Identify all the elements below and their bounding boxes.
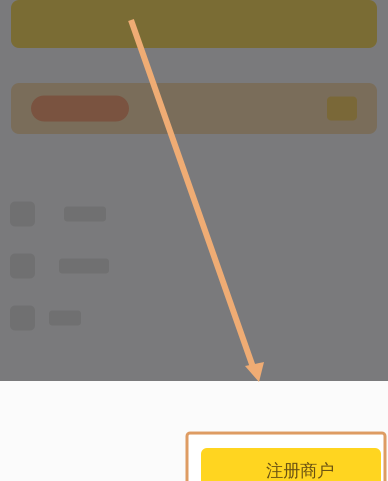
button[interactable] — [0, 240, 388, 292]
button[interactable]: 注册商户 — [187, 433, 385, 481]
button[interactable] — [0, 292, 388, 344]
button[interactable] — [0, 188, 388, 240]
staticText: 注册商户 — [266, 460, 334, 481]
